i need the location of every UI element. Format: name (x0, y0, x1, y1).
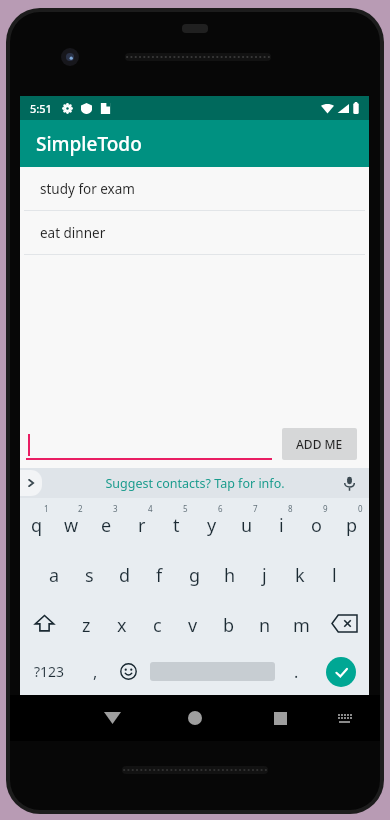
staticText: eat dinner (40, 224, 106, 242)
staticText: j (262, 563, 267, 588)
button[interactable]: f (142, 548, 177, 598)
staticText: y (207, 513, 217, 538)
button[interactable]: i (264, 498, 299, 548)
button[interactable]: Switch keyboard (330, 704, 358, 732)
button[interactable]: r (124, 498, 159, 548)
button[interactable]: Voice input (339, 473, 359, 493)
button[interactable]: e (89, 498, 124, 548)
staticText: k (295, 563, 305, 588)
button[interactable]: l (317, 548, 352, 598)
button[interactable]: Expand (20, 470, 42, 496)
button[interactable]: h (212, 548, 247, 598)
staticText: ADD ME (296, 436, 343, 452)
staticText: 8 (288, 503, 293, 514)
button[interactable]: a (37, 548, 72, 598)
button[interactable]: n (247, 598, 283, 648)
staticText: p (346, 513, 358, 538)
staticText: l (332, 563, 337, 588)
button[interactable]: d (107, 548, 142, 598)
staticText: r (138, 513, 146, 538)
button[interactable]: Emoji (111, 648, 145, 695)
button[interactable]: p (334, 498, 369, 548)
staticText: 6 (218, 503, 223, 514)
staticText: g (189, 563, 201, 588)
staticText: m (293, 613, 310, 638)
staticText: i (279, 513, 284, 538)
staticText: a (49, 563, 60, 588)
staticText: study for exam (40, 180, 135, 198)
button[interactable]: m (283, 598, 319, 648)
staticText: e (101, 513, 112, 538)
button[interactable]: s (72, 548, 107, 598)
staticText: v (188, 613, 198, 638)
staticText: 1 (44, 503, 49, 514)
button[interactable]: . (279, 648, 313, 695)
button[interactable]: x (104, 598, 139, 648)
button[interactable]: c (139, 598, 175, 648)
staticText: n (259, 613, 271, 638)
button[interactable]: ?123 (20, 648, 79, 695)
staticText: . (294, 661, 299, 683)
button[interactable]: Suggest contacts? Tap for info. (105, 475, 285, 492)
button[interactable]: Home (178, 701, 212, 735)
staticText: , (93, 661, 98, 683)
button[interactable]: Backspace (319, 598, 369, 648)
button[interactable]: study for exam (20, 167, 369, 211)
button[interactable]: w (54, 498, 89, 548)
button[interactable]: o (299, 498, 334, 548)
staticText: q (31, 513, 43, 538)
staticText: c (153, 613, 162, 638)
button[interactable]: Back (95, 701, 129, 735)
staticText: 2 (78, 503, 83, 514)
button[interactable] (26, 424, 272, 460)
button[interactable]: q (20, 498, 54, 548)
button[interactable]: y (194, 498, 229, 548)
staticText: 4 (148, 503, 153, 514)
staticText: 3 (113, 503, 118, 514)
staticText: s (85, 563, 94, 588)
button[interactable]: z (69, 598, 104, 648)
button[interactable]: j (247, 548, 282, 598)
staticText: o (311, 513, 322, 538)
button[interactable]: b (211, 598, 247, 648)
button[interactable]: , (79, 648, 111, 695)
button[interactable]: g (177, 548, 212, 598)
button[interactable]: Space (145, 648, 279, 695)
staticText: SimpleTodo (36, 131, 142, 157)
button[interactable]: Recents (263, 701, 297, 735)
staticText: z (82, 613, 91, 638)
staticText: b (223, 613, 235, 638)
staticText: t (173, 513, 180, 538)
staticText: 5:51 (30, 101, 52, 116)
staticText: 0 (358, 503, 363, 514)
staticText: 9 (323, 503, 328, 514)
button[interactable]: eat dinner (20, 211, 369, 255)
button[interactable]: Shift (20, 598, 69, 648)
button[interactable]: u (229, 498, 264, 548)
staticText: 5 (183, 503, 188, 514)
staticText: w (64, 513, 79, 538)
button[interactable]: v (175, 598, 211, 648)
button[interactable]: k (282, 548, 317, 598)
staticText: d (119, 563, 131, 588)
staticText: 7 (253, 503, 258, 514)
staticText: h (224, 563, 236, 588)
staticText: f (156, 563, 163, 588)
staticText: ?123 (34, 662, 65, 681)
staticText: x (117, 613, 127, 638)
button[interactable]: t (159, 498, 194, 548)
button[interactable]: ADD ME (282, 428, 357, 460)
staticText: u (241, 513, 253, 538)
button[interactable]: Enter (313, 648, 369, 695)
